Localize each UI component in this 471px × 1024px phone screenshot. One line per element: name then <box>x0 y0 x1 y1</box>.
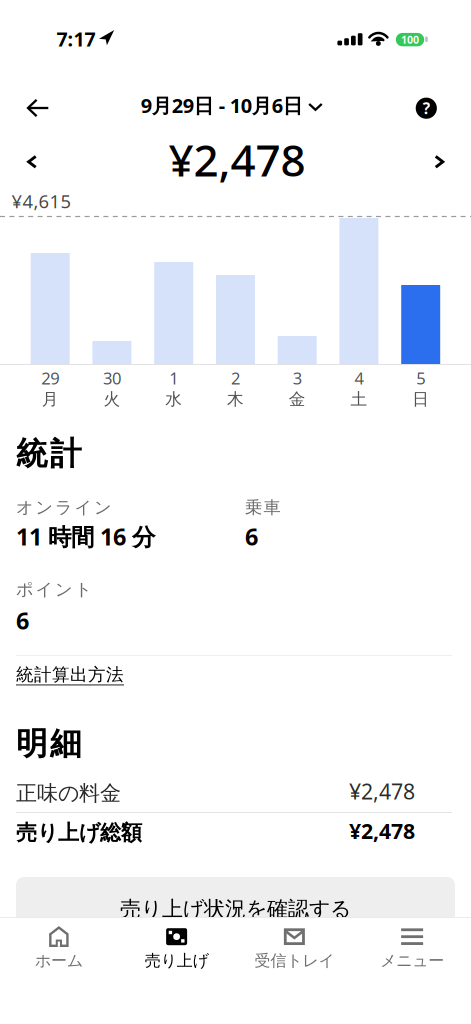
staticText: 売り上げ状況を確認する <box>120 896 351 922</box>
staticText: ¥4,615 <box>11 189 71 213</box>
staticText: 4 <box>354 367 363 389</box>
button[interactable]: 統計算出方法 <box>12 660 128 689</box>
staticText: ¥2,478 <box>349 777 415 805</box>
staticText: 3 <box>293 367 302 389</box>
button[interactable]: 9月29日 - 10月6日 <box>141 92 322 119</box>
staticText: 6 <box>245 521 258 552</box>
staticText: 30 <box>103 367 121 389</box>
staticText: 11 時間 16 分 <box>16 521 155 552</box>
staticText: ¥2,478 <box>168 130 305 189</box>
staticText: 乗車 <box>245 497 280 518</box>
button[interactable]: Help <box>410 92 443 125</box>
staticText: 売り上げ総額 <box>16 820 142 845</box>
staticText: ¥2,478 <box>349 817 415 845</box>
staticText: 明細 <box>16 724 82 763</box>
staticText: メニュー <box>380 951 444 971</box>
staticText: 5 <box>416 367 425 389</box>
staticText: 7:17 <box>56 26 95 52</box>
button[interactable]: Back <box>17 89 59 127</box>
staticText: オンライン <box>16 497 112 518</box>
staticText: 100 <box>401 33 419 47</box>
staticText: 9月29日 - 10月6日 <box>141 92 303 119</box>
button[interactable]: 売り上げ <box>118 917 236 979</box>
staticText: 土 <box>350 389 367 409</box>
staticText: 2 <box>231 367 240 389</box>
button[interactable]: 売り上げ状況を確認する <box>16 877 455 941</box>
button[interactable]: 受信トレイ <box>235 917 353 979</box>
staticText: 売り上げ <box>145 951 209 971</box>
staticText: 月 <box>42 389 59 409</box>
staticText: 29 <box>41 367 59 389</box>
staticText: 受信トレイ <box>254 951 334 971</box>
button[interactable]: Next week <box>425 145 454 178</box>
staticText: 日 <box>412 389 429 409</box>
staticText: 1 <box>169 367 178 389</box>
button[interactable]: ホーム <box>0 917 118 979</box>
staticText: 木 <box>227 389 244 409</box>
staticText: 金 <box>289 389 306 409</box>
button[interactable]: メニュー <box>353 917 471 979</box>
staticText: 正味の料金 <box>16 780 121 806</box>
button[interactable]: Previous week <box>17 145 47 178</box>
staticText: 統計算出方法 <box>16 664 124 685</box>
staticText: 6 <box>16 605 29 636</box>
staticText: ? <box>423 98 430 118</box>
staticText: 水 <box>165 389 182 409</box>
staticText: ホーム <box>35 951 83 971</box>
staticText: 統計 <box>16 434 82 473</box>
staticText: ポイント <box>16 579 92 600</box>
staticText: 火 <box>103 389 120 409</box>
